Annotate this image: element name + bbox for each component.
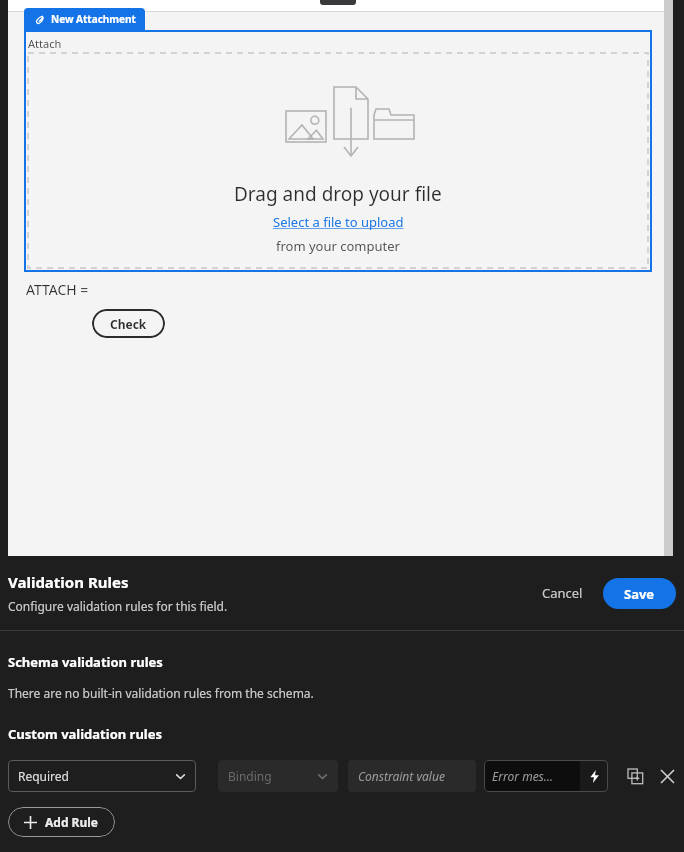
- staticText: Check: [110, 316, 147, 332]
- staticText: Drag and drop your file: [234, 181, 442, 207]
- staticText: from your computer: [276, 237, 400, 255]
- staticText: Save: [624, 585, 655, 603]
- staticText: Validation Rules: [8, 572, 129, 592]
- staticText: ATTACH =: [26, 280, 89, 299]
- staticText: Add Rule: [45, 814, 99, 830]
- button[interactable]: Add Rule: [8, 807, 115, 837]
- staticText: Configure validation rules for this fiel…: [8, 598, 228, 614]
- staticText: Schema validation rules: [8, 653, 163, 671]
- button[interactable]: Error mes…: [484, 760, 580, 792]
- staticText: Constraint value: [358, 768, 445, 784]
- button[interactable]: Cancel: [530, 577, 595, 609]
- staticText: There are no built-in validation rules f…: [8, 685, 314, 701]
- staticText: Cancel: [542, 584, 583, 602]
- button[interactable]: Expression: [580, 760, 608, 792]
- staticText: Error mes…: [492, 768, 554, 784]
- button[interactable]: Delete rule: [654, 763, 680, 789]
- staticText: Attach: [28, 36, 62, 51]
- staticText: New Attachment: [51, 12, 136, 26]
- button[interactable]: Binding: [218, 760, 338, 792]
- button[interactable]: New Attachment: [24, 8, 145, 30]
- button[interactable]: Required: [8, 760, 196, 792]
- button[interactable]: Save: [603, 578, 676, 609]
- staticText: Binding: [228, 768, 272, 784]
- staticText: Custom validation rules: [8, 725, 163, 743]
- button[interactable]: Constraint value: [348, 760, 476, 792]
- button[interactable]: Duplicate rule: [622, 763, 648, 789]
- button[interactable]: Select a file to upload: [273, 213, 404, 231]
- staticText: Required: [18, 768, 69, 784]
- staticText: Select a file to upload: [273, 213, 404, 231]
- button[interactable]: Check: [92, 309, 165, 338]
